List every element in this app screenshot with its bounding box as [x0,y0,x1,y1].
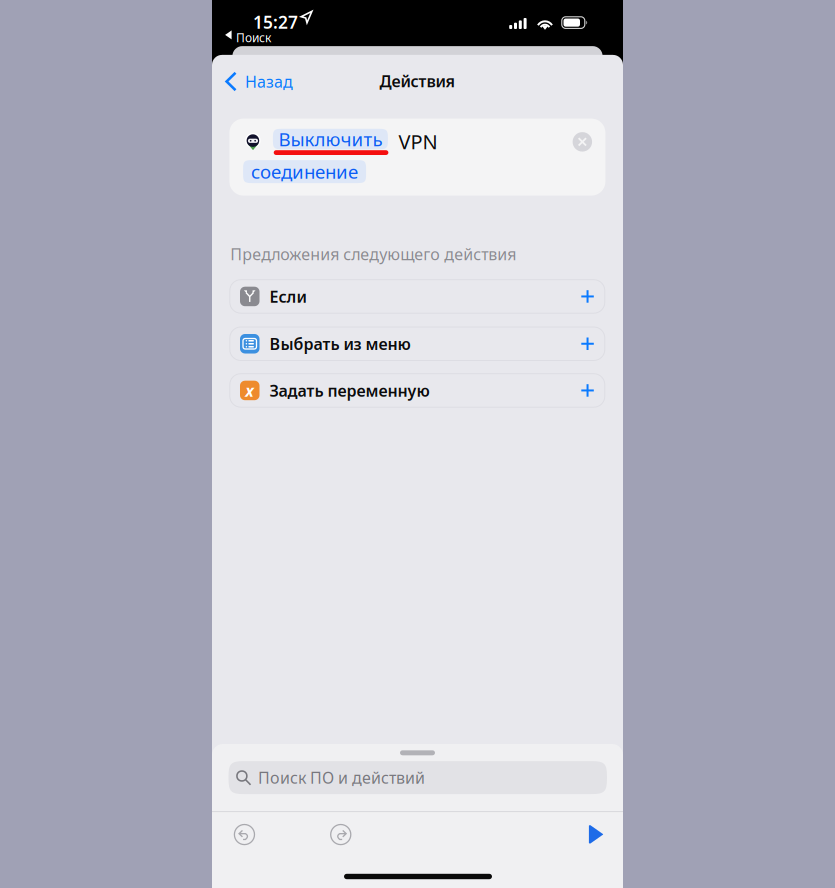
button[interactable]: Выбрать из меню [230,327,605,360]
staticText: x [245,380,254,401]
button[interactable]: x [230,374,605,407]
staticText: Назад [245,71,293,92]
staticText: Выключить [278,127,382,151]
staticText: 15:27 [253,10,298,33]
staticText: Действия [379,70,455,92]
staticText: Поиск ПО и действий [258,767,425,788]
staticText: VPN [398,128,437,155]
button[interactable]: Поиск ПО и действий [228,761,607,794]
button[interactable]: Назад [221,66,303,96]
staticText: соединение [251,159,358,184]
staticText: Поиск [236,30,271,45]
staticText: Если [269,286,306,307]
button[interactable]: Повторить [330,824,351,845]
button[interactable]: Отменить [234,824,255,845]
button[interactable]: Если [230,280,605,313]
staticText: Предложения следующего действия [230,243,516,265]
button[interactable]: Запустить [588,825,603,844]
staticText: Задать переменную [269,380,429,401]
button[interactable]: Удалить действие [573,132,592,152]
staticText: Выбрать из меню [269,333,410,354]
